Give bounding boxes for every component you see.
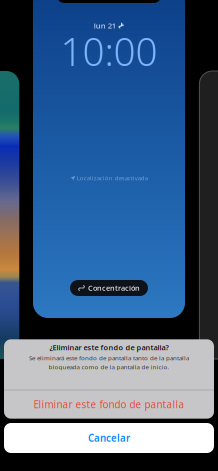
button[interactable]: Concentración	[70, 280, 148, 296]
staticText: Localización desactivada	[77, 174, 148, 182]
staticText: bloqueada como de la pantalla de inicio.	[48, 363, 169, 371]
staticText: lun 21	[94, 20, 116, 31]
staticText: Se eliminará este fondo de pantalla tant…	[29, 354, 189, 362]
staticText: 10:00	[60, 25, 157, 77]
button[interactable]: Cancelar	[4, 423, 214, 453]
staticText: Eliminar este fondo de pantalla	[33, 398, 184, 411]
button[interactable]: Eliminar este fondo de pantalla	[4, 390, 214, 419]
staticText: Concentración	[88, 283, 140, 293]
staticText: ¿Eliminar este fondo de pantalla?	[49, 342, 168, 352]
staticText: Cancelar	[88, 431, 130, 445]
